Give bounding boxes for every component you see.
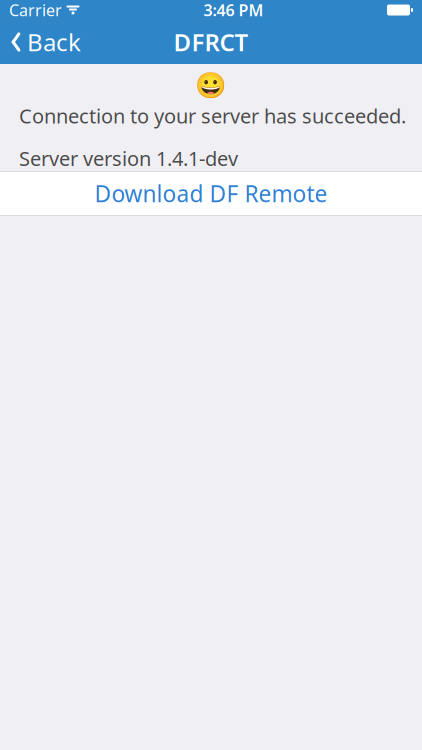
staticText: Connection to your server has succeeded. [19,102,406,129]
staticText: Back [27,26,81,58]
button[interactable]: Back [0,20,91,64]
button[interactable]: Download DF Remote [0,172,422,215]
staticText: Server version 1.4.1-dev [19,145,238,172]
staticText: Carrier [9,0,62,21]
staticText: Download DF Remote [94,178,327,208]
staticText: 😀 [195,71,227,100]
staticText: 3:46 PM [203,0,263,21]
staticText: DFRCT [173,26,248,58]
